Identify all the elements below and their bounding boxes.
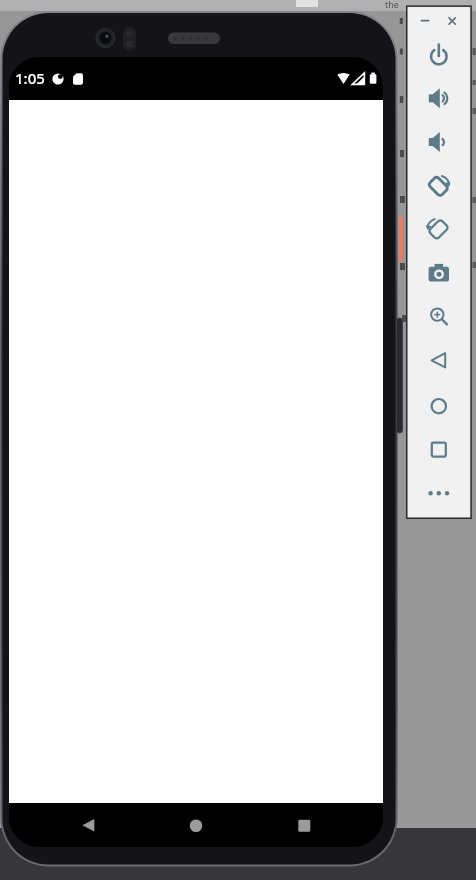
staticText: 1:05 bbox=[15, 68, 45, 88]
button[interactable] bbox=[423, 41, 454, 68]
button[interactable] bbox=[423, 303, 454, 330]
button[interactable] bbox=[423, 347, 454, 374]
button[interactable] bbox=[423, 128, 454, 155]
button[interactable] bbox=[423, 260, 454, 287]
button[interactable] bbox=[423, 479, 454, 506]
button[interactable] bbox=[414, 12, 430, 28]
button[interactable] bbox=[423, 435, 454, 462]
button[interactable] bbox=[78, 814, 102, 838]
button[interactable] bbox=[423, 172, 454, 199]
staticText: the bbox=[385, 0, 399, 10]
button[interactable] bbox=[443, 12, 459, 28]
button[interactable] bbox=[184, 814, 208, 838]
button[interactable] bbox=[423, 84, 454, 111]
button[interactable] bbox=[423, 391, 454, 418]
button[interactable] bbox=[423, 216, 454, 243]
button[interactable] bbox=[292, 814, 316, 838]
